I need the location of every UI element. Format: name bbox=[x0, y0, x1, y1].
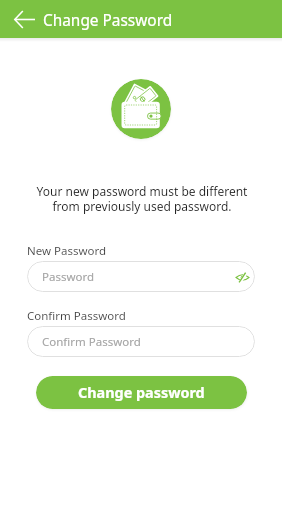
staticText: Confirm Password bbox=[27, 308, 126, 324]
staticText: Change Password bbox=[43, 10, 173, 31]
staticText: New Password bbox=[27, 243, 107, 259]
button[interactable]: Confirm Password bbox=[27, 326, 255, 357]
staticText: Password bbox=[42, 269, 95, 285]
staticText: Confirm Password bbox=[42, 334, 141, 350]
button[interactable]: Toggle password visibility bbox=[232, 267, 252, 287]
button[interactable]: Password bbox=[27, 261, 255, 292]
button[interactable]: Change password bbox=[36, 376, 247, 409]
button[interactable]: Back bbox=[8, 3, 40, 35]
staticText: Your new password must be different from… bbox=[1, 183, 282, 214]
staticText: Change password bbox=[78, 383, 205, 403]
